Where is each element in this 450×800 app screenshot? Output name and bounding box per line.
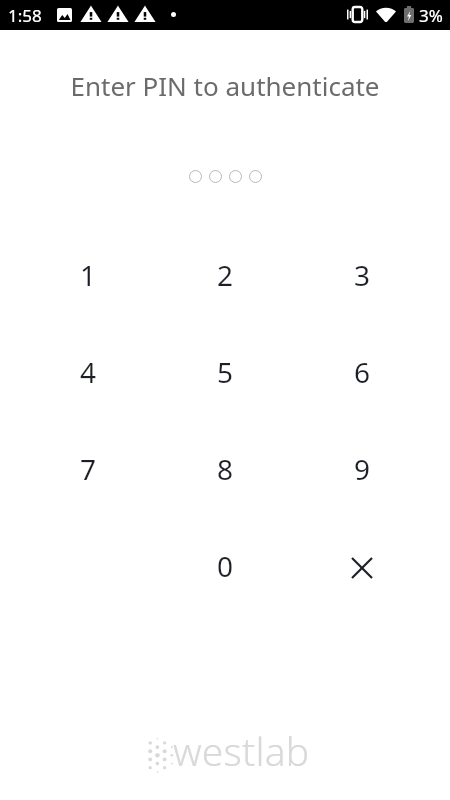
- button[interactable]: 5: [157, 323, 294, 420]
- staticText: 1: [80, 256, 97, 294]
- button[interactable]: 3: [294, 226, 431, 323]
- staticText: 7: [80, 450, 97, 488]
- button[interactable]: 2: [157, 226, 294, 323]
- button[interactable]: 0: [157, 517, 294, 614]
- staticText: 8: [217, 450, 234, 488]
- staticText: 0: [217, 547, 234, 585]
- button[interactable]: 8: [157, 420, 294, 517]
- staticText: 2: [217, 256, 234, 294]
- staticText: 9: [354, 450, 371, 488]
- staticText: 6: [354, 353, 371, 391]
- staticText: 5: [217, 353, 234, 391]
- staticText: 4: [80, 353, 97, 391]
- button[interactable]: 7: [19, 420, 157, 517]
- button[interactable]: Delete: [294, 517, 431, 614]
- button[interactable]: 4: [19, 323, 157, 420]
- staticText: 1:58: [8, 4, 42, 27]
- staticText: 3%: [419, 4, 443, 27]
- staticText: 3: [354, 256, 371, 294]
- staticText: Enter PIN to authenticate: [0, 68, 450, 103]
- button[interactable]: 1: [19, 226, 157, 323]
- staticText: westlab: [173, 724, 310, 777]
- button[interactable]: 6: [294, 323, 431, 420]
- button[interactable]: 9: [294, 420, 431, 517]
